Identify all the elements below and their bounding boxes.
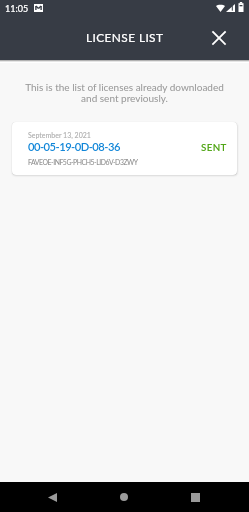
staticText: LICENSE LIST — [86, 30, 164, 44]
staticText: September 13, 2021 — [28, 131, 91, 139]
button[interactable]: September 13, 2021 — [12, 122, 237, 175]
button[interactable]: Back — [39, 484, 65, 510]
staticText: 00-05-19-0D-08-36 — [28, 140, 120, 153]
button[interactable]: Recents — [182, 484, 208, 510]
button[interactable]: Close — [206, 25, 232, 51]
staticText: FAVEOE-INF5G-PHCH5-LID6V-D3ZWY — [28, 158, 138, 166]
staticText: SENT — [201, 141, 227, 153]
button[interactable]: Home — [111, 484, 137, 510]
staticText: This is the list of licenses already dow… — [10, 81, 239, 104]
staticText: 11:05 — [5, 3, 29, 14]
